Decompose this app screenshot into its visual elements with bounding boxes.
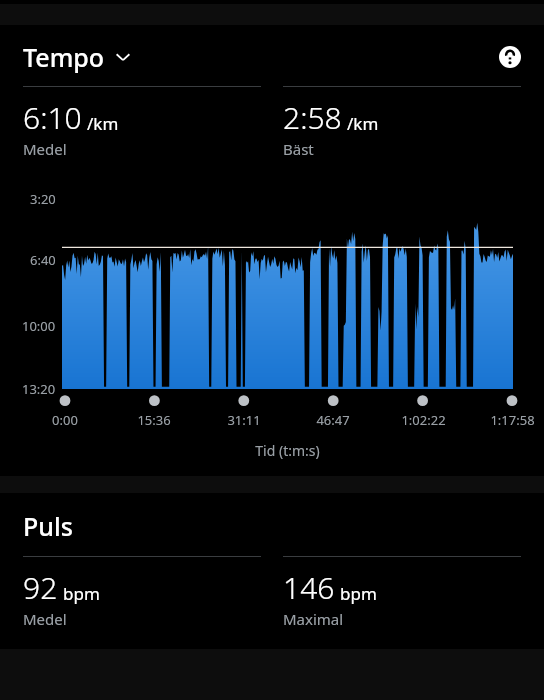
button[interactable]: Puls <box>0 509 544 543</box>
staticText: 31:11 <box>227 411 261 429</box>
button[interactable]: 6:10 <box>23 86 261 159</box>
staticText: 92 <box>23 567 58 608</box>
staticText: bpm <box>340 582 377 605</box>
staticText: Medel <box>23 609 67 629</box>
staticText: 10:00 <box>22 317 56 335</box>
staticText: 146 <box>283 567 335 608</box>
button[interactable]: Tempo <box>23 40 135 74</box>
button[interactable]: 146 <box>283 556 521 629</box>
staticText: Tempo <box>23 40 105 74</box>
staticText: Maximal <box>283 609 344 629</box>
staticText: /km <box>347 112 379 135</box>
staticText: 46:47 <box>316 411 350 429</box>
staticText: Tid (t:m:s) <box>62 441 513 460</box>
staticText: 13:20 <box>22 380 56 398</box>
staticText: 1:17:58 <box>490 411 535 429</box>
staticText: 6:10 <box>23 97 82 138</box>
staticText: 1:02:22 <box>401 411 446 429</box>
staticText: 0:00 <box>52 411 78 429</box>
button[interactable]: Help <box>494 41 526 73</box>
button[interactable]: 92 <box>23 556 261 629</box>
staticText: bpm <box>63 582 100 605</box>
staticText: /km <box>87 112 119 135</box>
staticText: 2:58 <box>283 97 342 138</box>
staticText: 15:36 <box>137 411 171 429</box>
staticText: Puls <box>23 509 73 543</box>
staticText: Bäst <box>283 139 314 159</box>
staticText: 3:20 <box>30 190 56 208</box>
staticText: Medel <box>23 139 67 159</box>
button[interactable]: 2:58 <box>283 86 521 159</box>
staticText: 6:40 <box>30 251 56 269</box>
